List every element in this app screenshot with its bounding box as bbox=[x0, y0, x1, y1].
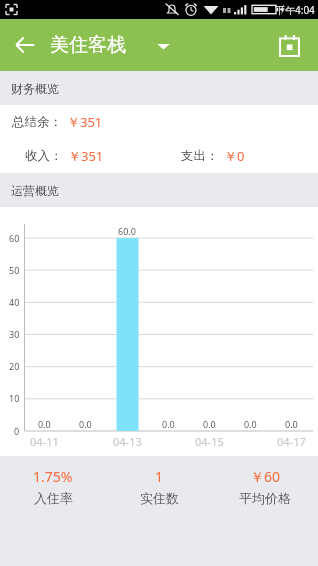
staticText: 支出： bbox=[181, 148, 219, 164]
button[interactable]: 美住客栈 bbox=[50, 33, 171, 57]
staticText: 04-11 bbox=[30, 434, 59, 449]
staticText: 财务概览 bbox=[11, 81, 59, 96]
staticText: 0.0 bbox=[285, 418, 298, 430]
staticText: 美住客栈 bbox=[50, 33, 126, 57]
staticText: 0.0 bbox=[162, 418, 175, 430]
staticText: 0.0 bbox=[244, 418, 257, 430]
staticText: 入住率 bbox=[34, 490, 73, 506]
staticText: 1.75% bbox=[33, 467, 73, 486]
staticText: 30 bbox=[9, 328, 20, 340]
staticText: 平均价格 bbox=[239, 490, 291, 506]
staticText: 0.0 bbox=[79, 418, 92, 430]
staticText: 20 bbox=[9, 360, 20, 372]
staticText: ￥351 bbox=[68, 147, 104, 165]
staticText: 收入： bbox=[25, 148, 63, 164]
staticText: ￥60 bbox=[250, 467, 281, 486]
staticText: 实住数 bbox=[140, 490, 179, 506]
staticText: ￥351 bbox=[67, 113, 103, 131]
staticText: 04-15 bbox=[195, 434, 224, 449]
staticText: 0.0 bbox=[203, 418, 216, 430]
staticText: 10 bbox=[9, 392, 20, 404]
button[interactable]: ￥60 bbox=[212, 467, 318, 506]
button[interactable]: 1.75% bbox=[0, 467, 106, 506]
staticText: 50 bbox=[9, 264, 20, 276]
staticText: 0.0 bbox=[38, 418, 51, 430]
button[interactable]: 返回 bbox=[4, 24, 46, 66]
staticText: 总结余： bbox=[12, 114, 62, 130]
button[interactable]: 日历 bbox=[268, 24, 310, 66]
staticText: 0 bbox=[14, 425, 20, 437]
staticText: 运营概览 bbox=[11, 183, 59, 198]
staticText: 60.0 bbox=[118, 225, 136, 237]
staticText: 1 bbox=[155, 467, 164, 486]
staticText: 04-13 bbox=[113, 434, 142, 449]
staticText: 04-17 bbox=[277, 434, 306, 449]
staticText: 60 bbox=[9, 232, 20, 244]
button[interactable]: 1 bbox=[106, 467, 212, 506]
staticText: ￥0 bbox=[224, 147, 245, 165]
staticText: 40 bbox=[9, 296, 20, 308]
staticText: 下午4:04 bbox=[275, 3, 315, 17]
